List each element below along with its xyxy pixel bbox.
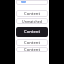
staticText: Unmatched <box>22 19 43 24</box>
button[interactable]: Content <box>16 39 48 46</box>
button[interactable]: Content <box>16 47 48 52</box>
staticText: Content <box>24 29 41 35</box>
button[interactable]: Content <box>16 27 48 37</box>
staticText: Content <box>24 47 41 52</box>
button[interactable]: Unmatched <box>16 18 48 24</box>
staticText: Content <box>24 40 41 46</box>
staticText: Content <box>24 11 41 17</box>
button[interactable]: Content <box>16 10 48 17</box>
button[interactable] <box>16 0 48 5</box>
